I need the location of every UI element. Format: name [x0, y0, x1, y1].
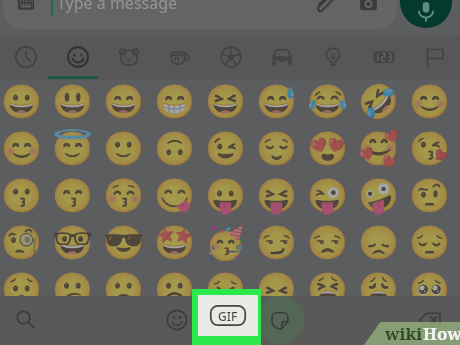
- staticText: 😫: [307, 270, 349, 309]
- button[interactable]: Smileys: [52, 36, 103, 80]
- button[interactable]: Emoji: [153, 296, 200, 343]
- staticText: 😟: [1, 270, 43, 309]
- staticText: 😒: [307, 223, 349, 262]
- button[interactable]: 😂: [302, 78, 353, 125]
- button[interactable]: 🙁: [98, 266, 149, 313]
- button[interactable]: 😚: [98, 172, 149, 219]
- button[interactable]: Recent: [0, 36, 52, 80]
- button[interactable]: 🤣: [353, 78, 404, 125]
- staticText: 😀: [1, 82, 43, 121]
- button[interactable]: 😏: [251, 219, 302, 266]
- button[interactable]: 😝: [251, 172, 302, 219]
- staticText: 😇: [52, 129, 94, 168]
- staticText: ☹️: [154, 270, 196, 309]
- button[interactable]: 😍: [302, 125, 353, 172]
- staticText: 😣: [205, 270, 247, 309]
- button[interactable]: 😞: [353, 219, 404, 266]
- button[interactable]: Stickers: [256, 296, 303, 343]
- button[interactable]: Voice message: [400, 0, 452, 28]
- button[interactable]: 🙂: [98, 125, 149, 172]
- staticText: 😏: [256, 223, 298, 262]
- button[interactable]: 😛: [200, 172, 251, 219]
- staticText: 😉: [205, 129, 247, 168]
- button[interactable]: 🤨: [404, 172, 455, 219]
- button[interactable]: 😁: [149, 78, 200, 125]
- button[interactable]: 🥳: [200, 219, 251, 266]
- button[interactable]: ☹️: [149, 266, 200, 313]
- staticText: 😊: [1, 129, 43, 168]
- button[interactable]: 😊: [404, 78, 455, 125]
- button[interactable]: 😒: [302, 219, 353, 266]
- staticText: 😕: [52, 270, 94, 309]
- staticText: 😖: [256, 270, 298, 309]
- button[interactable]: 🤪: [353, 172, 404, 219]
- staticText: 😋: [154, 176, 196, 215]
- button[interactable]: 😟: [0, 266, 47, 313]
- button[interactable]: 🥰: [353, 125, 404, 172]
- staticText: 🙃: [154, 129, 196, 168]
- button[interactable]: 😘: [404, 125, 455, 172]
- button[interactable]: Camera: [359, 0, 378, 13]
- staticText: 🤩: [154, 223, 196, 262]
- button[interactable]: 😕: [47, 266, 98, 313]
- staticText: GIF: [218, 308, 238, 324]
- button[interactable]: 🤩: [149, 219, 200, 266]
- button[interactable]: 😆: [200, 78, 251, 125]
- button[interactable]: 🥺: [404, 266, 455, 313]
- button[interactable]: Backspace: [406, 296, 453, 343]
- staticText: 🧐: [1, 223, 43, 262]
- button[interactable]: 😌: [251, 125, 302, 172]
- button[interactable]: Search: [2, 296, 49, 343]
- staticText: 🤨: [409, 176, 451, 215]
- button[interactable]: Travel: [256, 36, 307, 80]
- button[interactable]: 😩: [353, 266, 404, 313]
- button[interactable]: 😜: [302, 172, 353, 219]
- button[interactable]: Attach: [313, 0, 336, 15]
- staticText: 😔: [409, 223, 451, 262]
- button[interactable]: 😋: [149, 172, 200, 219]
- staticText: 😊: [409, 82, 451, 121]
- button[interactable]: 😉: [200, 125, 251, 172]
- button[interactable]: 🙃: [149, 125, 200, 172]
- staticText: 😎: [103, 223, 145, 262]
- staticText: 🙂: [103, 129, 145, 168]
- button[interactable]: 😎: [98, 219, 149, 266]
- button[interactable]: 😣: [200, 266, 251, 313]
- staticText: 😗: [1, 176, 43, 215]
- button[interactable]: Food: [154, 36, 205, 80]
- staticText: 😚: [103, 176, 145, 215]
- staticText: 😝: [256, 176, 298, 215]
- button[interactable]: Keyboard: [17, 0, 35, 13]
- staticText: 🤓: [52, 223, 94, 262]
- button[interactable]: GIF: [198, 295, 258, 336]
- staticText: 😌: [256, 129, 298, 168]
- staticText: Type a message: [57, 0, 178, 14]
- button[interactable]: 😇: [47, 125, 98, 172]
- button[interactable]: 😫: [302, 266, 353, 313]
- staticText: 😃: [52, 82, 94, 121]
- button[interactable]: Objects: [307, 36, 358, 80]
- button[interactable]: 🤓: [47, 219, 98, 266]
- button[interactable]: [3, 0, 397, 29]
- button[interactable]: Flags: [409, 36, 460, 80]
- button[interactable]: Symbols: [358, 36, 409, 80]
- button[interactable]: Activities: [205, 36, 256, 80]
- staticText: 😄: [103, 82, 145, 121]
- button[interactable]: Animals: [103, 36, 154, 80]
- staticText: 😁: [154, 82, 196, 121]
- button[interactable]: 😃: [47, 78, 98, 125]
- button[interactable]: 😄: [98, 78, 149, 125]
- button[interactable]: 😗: [0, 172, 47, 219]
- button[interactable]: 😔: [404, 219, 455, 266]
- staticText: How: [423, 322, 460, 345]
- button[interactable]: 😊: [0, 125, 47, 172]
- staticText: 🙁: [103, 270, 145, 309]
- button[interactable]: 😅: [251, 78, 302, 125]
- button[interactable]: 😀: [0, 78, 47, 125]
- staticText: 😘: [409, 129, 451, 168]
- button[interactable]: 😙: [47, 172, 98, 219]
- button[interactable]: 🧐: [0, 219, 47, 266]
- staticText: 😙: [52, 176, 94, 215]
- staticText: 😍: [307, 129, 349, 168]
- button[interactable]: 😖: [251, 266, 302, 313]
